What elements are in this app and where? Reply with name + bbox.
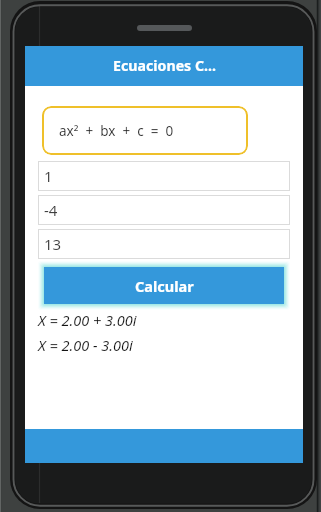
staticText: X = 2.00 + 3.00i (38, 310, 137, 330)
staticText: -4 (44, 200, 58, 220)
button[interactable]: 1 (38, 161, 290, 191)
button[interactable]: 13 (38, 229, 290, 259)
staticText: Ecuaciones C... (113, 56, 216, 75)
staticText: ax² + bx + c = 0 (59, 122, 174, 140)
button[interactable]: Ecuaciones C... (25, 46, 303, 86)
staticText: 13 (44, 234, 62, 254)
staticText: 1 (44, 166, 53, 186)
button[interactable]: -4 (38, 195, 290, 225)
staticText: Calcular (135, 276, 194, 296)
button[interactable]: Calcular (44, 267, 284, 304)
staticText: X = 2.00 - 3.00i (38, 335, 133, 355)
